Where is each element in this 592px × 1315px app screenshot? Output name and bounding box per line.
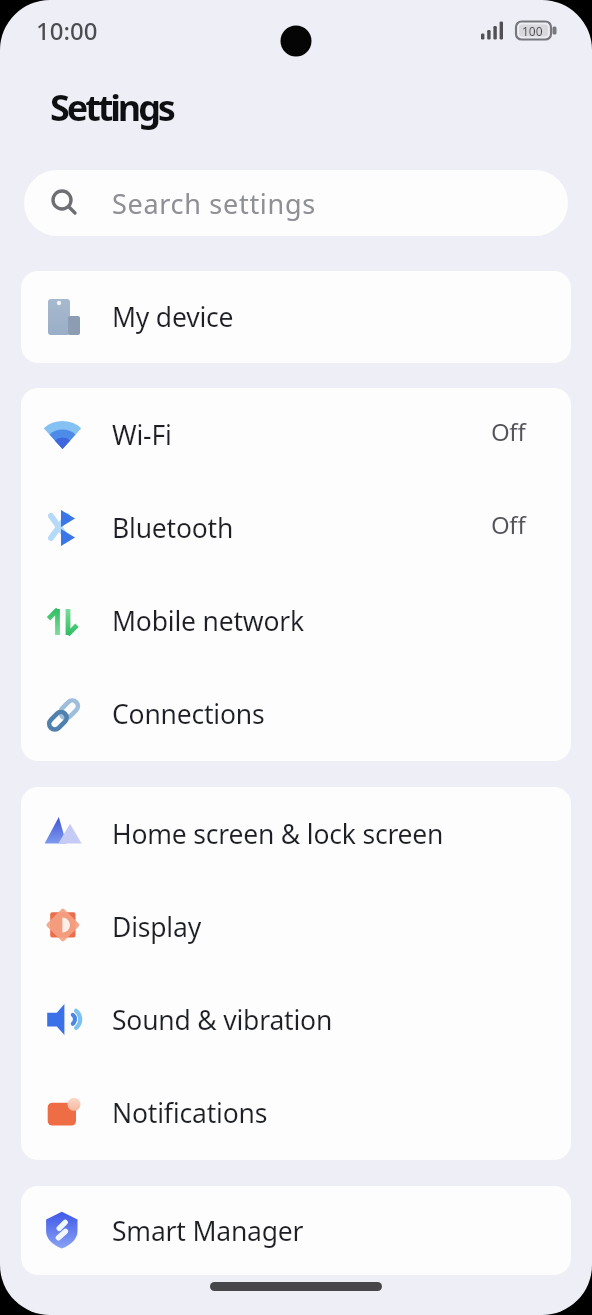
staticText: 100	[522, 23, 543, 39]
button[interactable]: My device	[21, 271, 571, 363]
staticText: Home screen & lock screen	[112, 816, 444, 852]
button[interactable]: Smart Manager	[21, 1186, 571, 1275]
button[interactable]: Home screen & lock screen	[21, 787, 571, 880]
staticText: Search settings	[112, 185, 316, 222]
button[interactable]: Connections	[21, 667, 571, 761]
staticText: Off	[491, 508, 526, 541]
staticText: Settings	[50, 83, 173, 132]
button[interactable]: Wi-Fi	[21, 388, 571, 481]
staticText: Bluetooth	[112, 510, 234, 546]
button[interactable]: Display	[21, 880, 571, 973]
button[interactable]: Sound & vibration	[21, 973, 571, 1066]
staticText: Sound & vibration	[112, 1002, 333, 1038]
button[interactable]: Notifications	[21, 1066, 571, 1160]
staticText: Wi-Fi	[112, 417, 172, 453]
staticText: Connections	[112, 696, 265, 732]
button[interactable]: Mobile network	[21, 574, 571, 667]
staticText: Off	[491, 415, 526, 448]
button[interactable]: Bluetooth	[21, 481, 571, 574]
staticText: 10:00	[36, 14, 98, 47]
staticText: Display	[112, 909, 201, 945]
staticText: My device	[112, 299, 234, 335]
button[interactable]: Search settings	[24, 170, 568, 236]
staticText: Smart Manager	[112, 1213, 304, 1249]
staticText: Notifications	[112, 1095, 268, 1131]
staticText: Mobile network	[112, 603, 304, 639]
